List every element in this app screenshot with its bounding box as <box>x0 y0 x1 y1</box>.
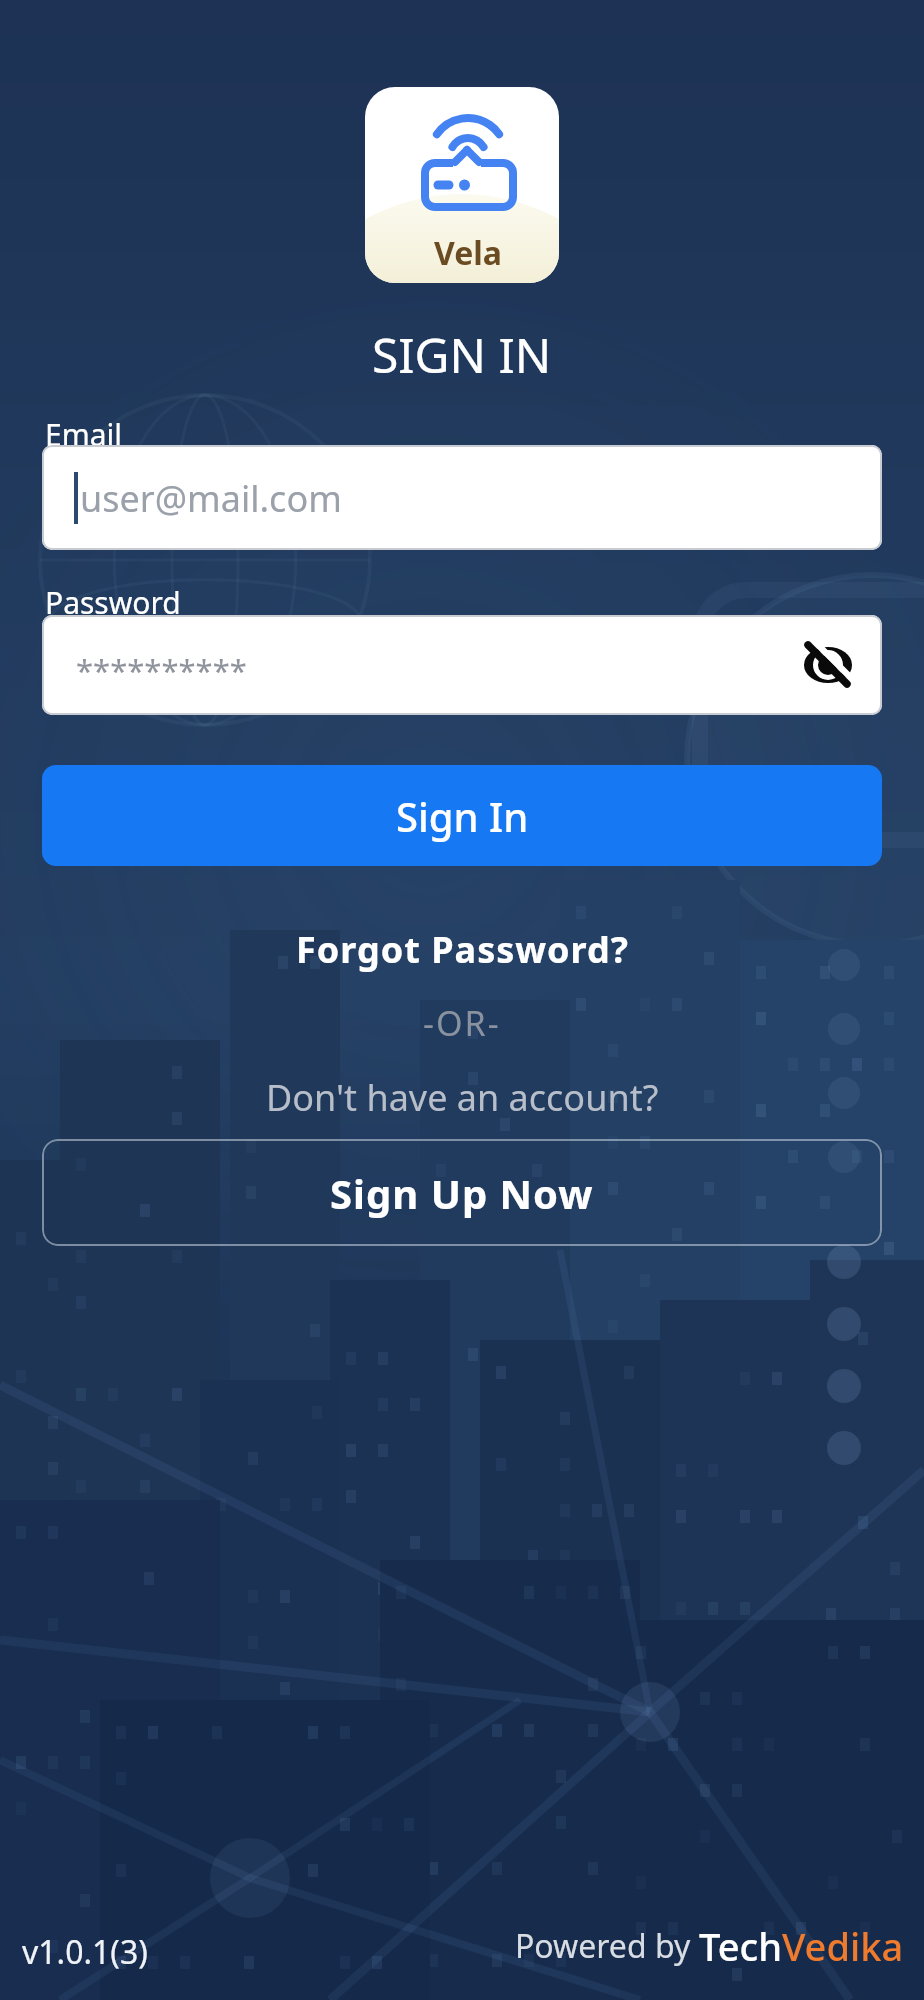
staticText: ********** <box>76 649 247 691</box>
button[interactable]: Forgot Password? <box>296 925 629 974</box>
staticText: SIGN IN <box>372 322 552 387</box>
staticText: TechVedika <box>699 1920 904 1972</box>
staticText: Don't have an account? <box>266 1073 659 1122</box>
staticText: Sign Up Now <box>330 1166 594 1220</box>
button[interactable]: Vela <box>365 87 559 283</box>
button[interactable]: user@mail.com <box>42 445 882 550</box>
staticText: -OR- <box>423 1000 501 1046</box>
staticText: Powered by <box>515 1924 699 1968</box>
button[interactable]: Sign Up Now <box>42 1139 882 1246</box>
staticText: Sign In <box>396 789 529 843</box>
staticText: Email <box>45 414 123 455</box>
staticText: Password <box>45 582 181 623</box>
staticText: Vela <box>434 231 502 275</box>
button[interactable]: Sign In <box>42 765 882 866</box>
staticText: user@mail.com <box>80 474 342 523</box>
button[interactable]: ********** <box>42 615 882 715</box>
staticText: v1.0.1(3) <box>22 1930 148 1974</box>
